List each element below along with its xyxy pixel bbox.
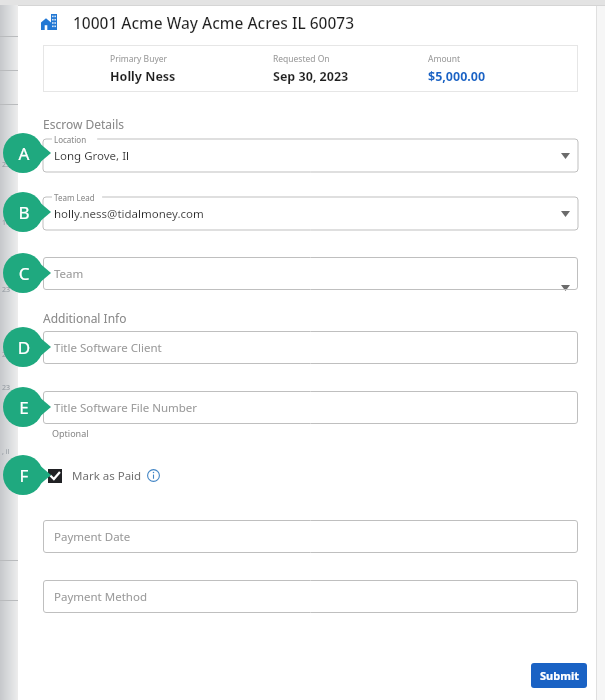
staticText: Submit <box>540 668 579 683</box>
staticText: E <box>14 396 34 419</box>
staticText: Optional <box>52 427 89 439</box>
staticText: F <box>14 464 34 487</box>
button[interactable]: Team <box>43 257 578 290</box>
staticText: 23 <box>2 285 11 295</box>
staticText: Team Lead <box>54 192 95 203</box>
staticText: Additional Info <box>43 310 127 326</box>
staticText: Title Software Client <box>54 340 162 356</box>
staticText: Requested On <box>273 53 330 65</box>
button[interactable]: Mark as Paid <box>48 465 142 487</box>
button[interactable]: Location <box>43 139 578 172</box>
button[interactable]: More information <box>144 466 162 484</box>
staticText: D <box>14 336 34 359</box>
staticText: Primary Buyer <box>110 53 168 65</box>
staticText: , il <box>2 447 10 457</box>
staticText: Amount <box>428 53 461 65</box>
staticText: 16 <box>2 218 11 228</box>
button[interactable]: Payment Date <box>43 520 578 553</box>
staticText: Payment Date <box>54 529 131 545</box>
staticText: Team <box>54 266 84 282</box>
staticText: 23 <box>2 383 11 393</box>
staticText: Title Software File Number <box>54 400 198 416</box>
staticText: A <box>14 142 34 165</box>
button[interactable]: Submit <box>531 663 587 688</box>
staticText: 10001 Acme Way Acme Acres IL 60073 <box>73 12 355 33</box>
button[interactable]: Title Software Client <box>43 331 578 364</box>
staticText: B <box>14 201 34 224</box>
staticText: $5,000.00 <box>428 68 486 85</box>
staticText: Payment Method <box>54 589 147 605</box>
staticText: Holly Ness <box>110 68 176 85</box>
staticText: Location <box>54 134 87 145</box>
button[interactable]: Payment Method <box>43 580 578 613</box>
staticText: Long Grove, Il <box>54 148 130 164</box>
staticText: 25 <box>2 350 11 360</box>
staticText: holly.ness@tidalmoney.com <box>54 206 204 222</box>
staticText: 23 <box>2 160 11 170</box>
staticText: Escrow Details <box>43 116 125 132</box>
staticText: Sep 30, 2023 <box>273 68 349 85</box>
staticText: C <box>14 262 34 285</box>
staticText: Mark as Paid <box>72 468 142 484</box>
button[interactable]: Team Lead <box>43 197 578 230</box>
button[interactable]: Title Software File Number <box>43 391 578 424</box>
